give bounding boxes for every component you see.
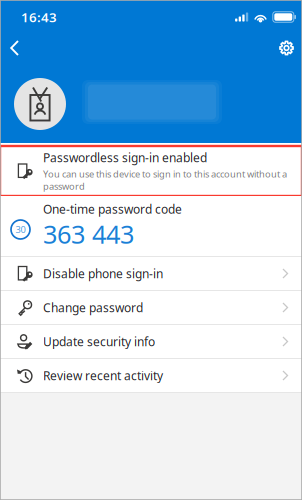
button[interactable]: Settings <box>269 32 302 63</box>
button[interactable]: Passwordless sign-in enabled <box>0 146 302 196</box>
staticText: Passwordless sign-in enabled <box>43 150 207 165</box>
staticText: Update security info <box>43 333 155 349</box>
staticText: Change password <box>43 299 143 315</box>
button[interactable]: Change password <box>0 291 302 324</box>
staticText: 363 443 <box>43 217 134 251</box>
staticText: Disable phone sign-in <box>43 265 163 281</box>
staticText: 16:43 <box>21 8 57 26</box>
staticText: 30 <box>15 223 25 236</box>
staticText: Review recent activity <box>43 367 163 383</box>
staticText: One-time password code <box>43 201 182 217</box>
button[interactable]: Update security info <box>0 325 302 358</box>
button[interactable]: Back <box>0 32 29 64</box>
staticText: You can use this device to sign in to th… <box>43 168 287 192</box>
button[interactable]: Disable phone sign-in <box>0 257 302 290</box>
button[interactable]: Review recent activity <box>0 359 302 392</box>
